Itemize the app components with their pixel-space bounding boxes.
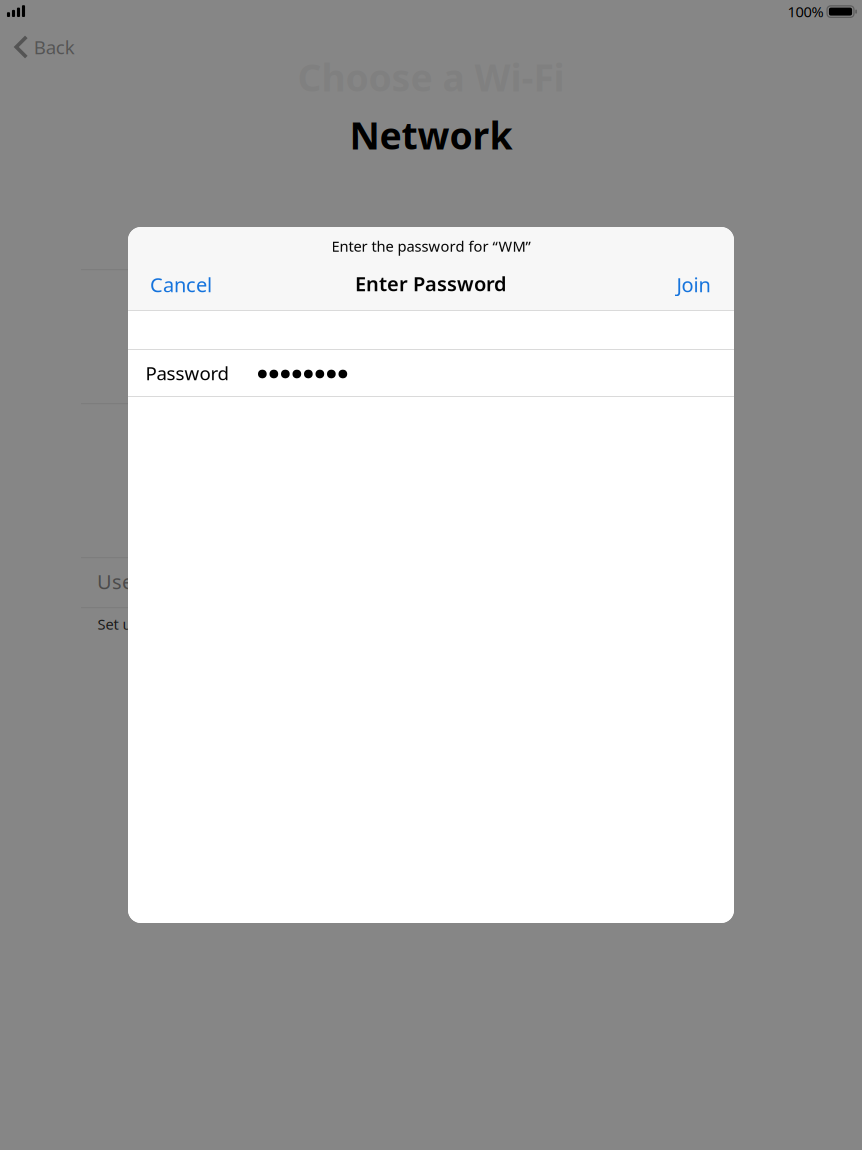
button[interactable]: Cancel bbox=[128, 266, 232, 302]
staticText: Back bbox=[34, 35, 75, 59]
staticText: Network bbox=[349, 110, 512, 160]
button[interactable]: Password bbox=[128, 350, 734, 396]
staticText: 100% bbox=[787, 2, 823, 21]
staticText: Cancel bbox=[150, 271, 212, 298]
button[interactable]: Back bbox=[0, 27, 85, 67]
staticText: Password bbox=[145, 361, 228, 385]
button[interactable]: Join bbox=[651, 266, 734, 302]
staticText: Enter the password for “WM” bbox=[331, 236, 530, 256]
staticText: Enter Password bbox=[355, 270, 507, 297]
staticText: Set up your Apple TV with Wi-Fi bbox=[97, 614, 312, 634]
button[interactable]: Use Cellular Connection bbox=[97, 572, 357, 590]
staticText: Use Cellular Connection bbox=[97, 568, 319, 595]
staticText: Join bbox=[677, 271, 711, 298]
